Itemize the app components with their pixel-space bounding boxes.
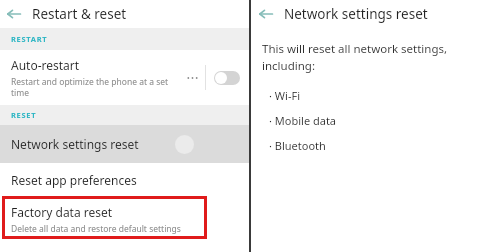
staticText: Factory data reset [11,204,113,220]
staticText: This will reset all network settings, in… [262,41,448,73]
button[interactable]: Network settings reset [0,125,249,163]
staticText: · Wi-Fi [269,88,300,103]
staticText: Network settings reset [11,136,175,152]
staticText: RESET [11,110,37,120]
staticText: · Mobile data [269,113,337,128]
button[interactable]: Back [0,0,249,28]
button[interactable]: Auto-restart switch [214,71,240,85]
staticText: Restart & reset [32,5,127,23]
button[interactable]: Factory data reset [0,196,249,241]
staticText: RESTART [11,34,48,44]
staticText: · Bluetooth [269,138,326,153]
staticText: Network settings reset [284,5,428,23]
button[interactable]: More options [184,70,200,86]
staticText: Delete all data and restore default sett… [11,223,181,235]
button[interactable]: Auto-restart [0,50,249,105]
staticText: Auto-restart [11,57,80,73]
staticText: Reset app preferences [11,172,137,188]
button[interactable]: Reset app preferences [0,163,249,196]
button[interactable]: Back [251,0,501,28]
staticText: Restart and optimize the phone at a set … [11,76,179,98]
